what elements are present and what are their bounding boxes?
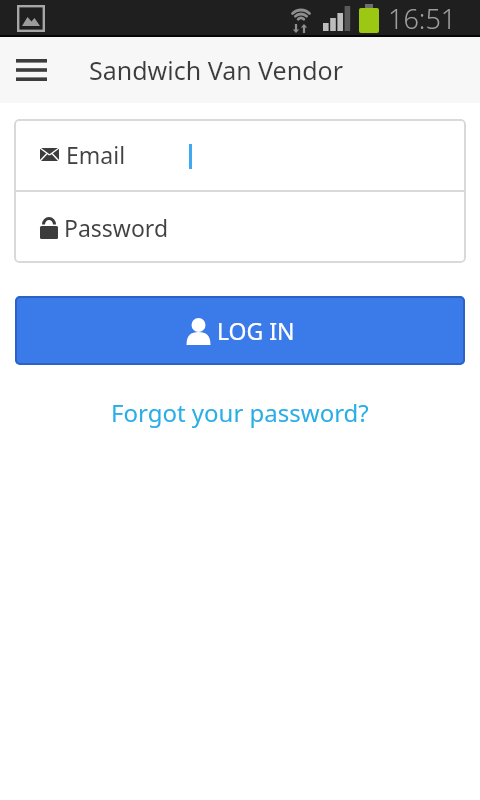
staticText: LOG IN: [217, 315, 295, 346]
button[interactable]: [0, 37, 62, 103]
button[interactable]: Email: [14, 119, 466, 190]
staticText: 16:51: [388, 0, 457, 37]
button[interactable]: Forgot your password?: [111, 396, 369, 429]
staticText: Password: [64, 212, 169, 243]
staticText: Sandwich Van Vendor: [89, 53, 343, 87]
staticText: Email: [66, 139, 126, 170]
button[interactable]: Password: [14, 192, 466, 263]
button[interactable]: LOG IN: [15, 296, 465, 365]
staticText: Forgot your password?: [111, 396, 369, 429]
